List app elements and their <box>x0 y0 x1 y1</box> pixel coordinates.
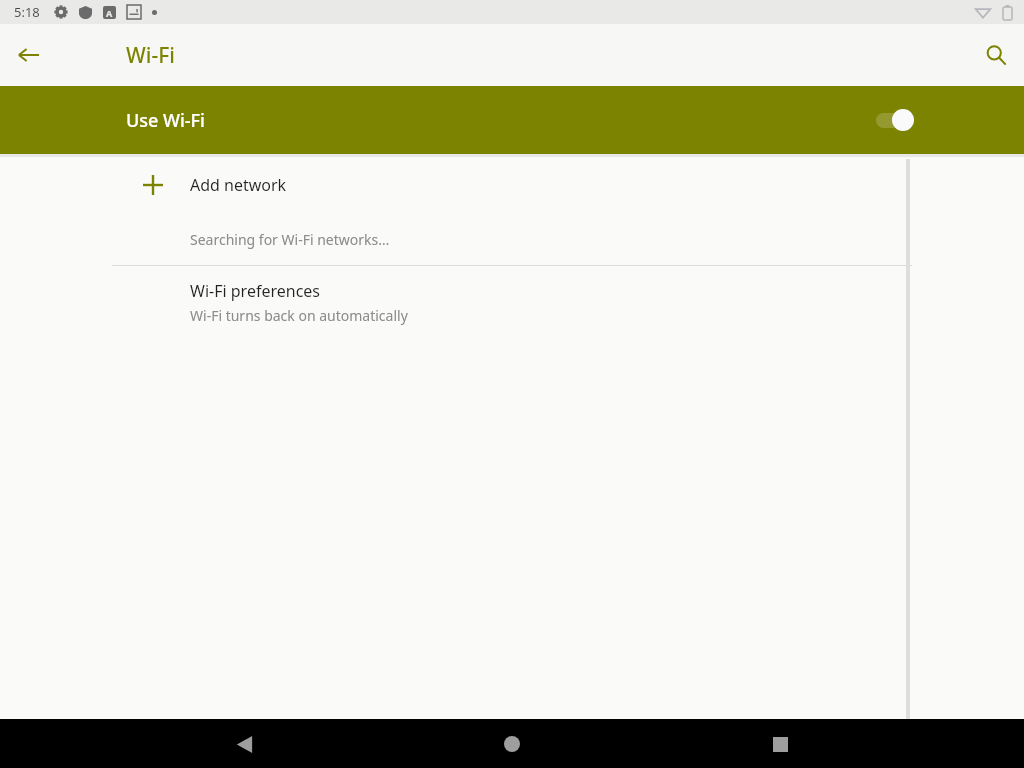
staticText: Add network <box>190 174 287 196</box>
button[interactable]: Back <box>5 31 53 79</box>
button[interactable]: Use Wi-Fi <box>0 86 1024 154</box>
staticText: Wi-Fi turns back on automatically <box>190 306 408 325</box>
staticText: Searching for Wi-Fi networks… <box>190 230 390 249</box>
staticText: Wi-Fi <box>126 41 175 70</box>
button[interactable]: Back <box>220 720 268 768</box>
button[interactable]: Add network <box>0 157 1024 213</box>
staticText: A <box>106 7 113 19</box>
button[interactable]: Home <box>488 720 536 768</box>
staticText: 5:18 <box>14 3 40 21</box>
button[interactable]: Wi-Fi preferences <box>0 266 1024 338</box>
staticText: Wi-Fi preferences <box>190 280 321 302</box>
staticText: Use Wi-Fi <box>126 108 205 133</box>
button[interactable]: Search <box>972 31 1020 79</box>
button[interactable]: Recent apps <box>756 720 804 768</box>
